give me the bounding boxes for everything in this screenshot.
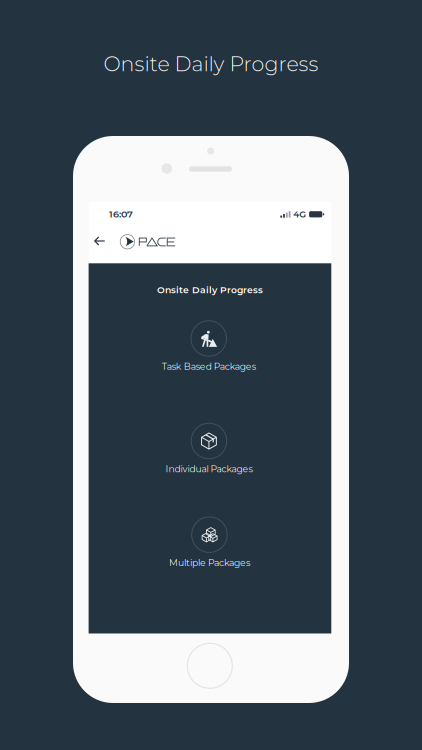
button[interactable]: PACE home xyxy=(120,233,177,251)
button[interactable]: Task Based Packages xyxy=(162,321,256,372)
staticText: 4G xyxy=(293,209,306,220)
staticText: Individual Packages xyxy=(165,463,252,474)
staticText: 16:07 xyxy=(109,208,133,220)
staticText: Onsite Daily Progress xyxy=(103,51,318,76)
button[interactable]: Back xyxy=(89,230,111,252)
button[interactable]: Multiple Packages xyxy=(169,517,250,568)
button[interactable]: Individual Packages xyxy=(165,423,252,474)
staticText: Multiple Packages xyxy=(169,557,250,568)
staticText: Onsite Daily Progress xyxy=(157,284,263,295)
staticText: Task Based Packages xyxy=(162,361,256,372)
